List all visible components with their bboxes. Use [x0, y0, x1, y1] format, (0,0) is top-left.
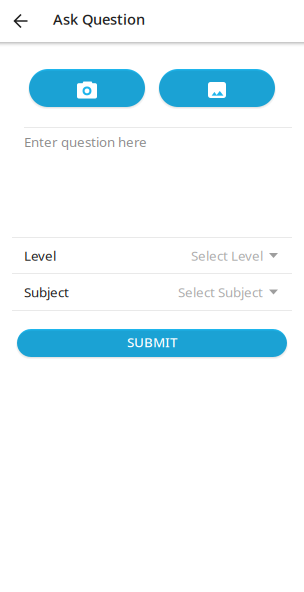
button[interactable]: Choose image [159, 69, 275, 107]
staticText: SUBMIT [127, 333, 177, 351]
staticText: Level [24, 247, 56, 264]
button[interactable]: SUBMIT [17, 329, 287, 357]
button[interactable]: Take photo [29, 69, 145, 107]
button[interactable]: Subject [0, 274, 304, 310]
button[interactable]: Enter question here [0, 128, 304, 237]
button[interactable]: Level [0, 238, 304, 273]
staticText: Select Level [191, 247, 263, 264]
staticText: Enter question here [24, 133, 147, 151]
staticText: Subject [24, 283, 69, 301]
staticText: Ask Question [53, 9, 145, 29]
staticText: Select Subject [178, 283, 263, 301]
button[interactable]: Back [0, 0, 42, 42]
